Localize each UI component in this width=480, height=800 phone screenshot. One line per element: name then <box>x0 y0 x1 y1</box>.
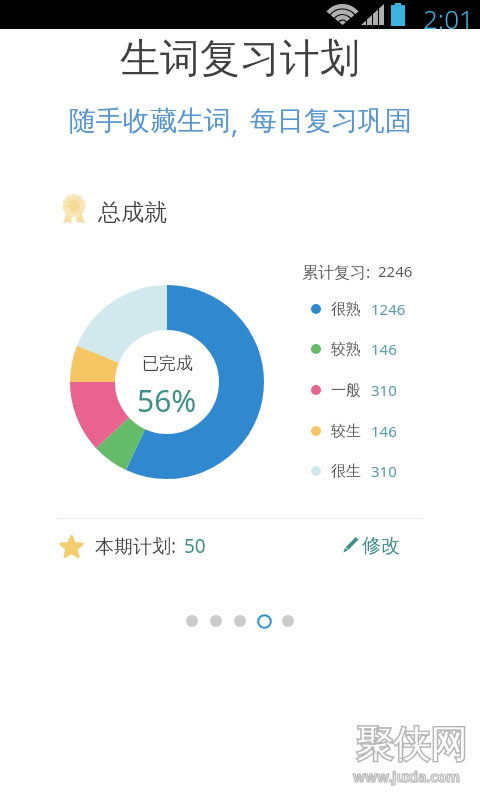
button[interactable]: Page 5 <box>276 609 300 633</box>
staticText: 本期计划: <box>95 533 177 559</box>
staticText: 310 <box>371 461 397 481</box>
button[interactable]: 一般 <box>311 377 397 403</box>
staticText: 56% <box>137 380 197 421</box>
staticText: 很熟 <box>331 300 361 319</box>
button[interactable]: 很熟 <box>311 296 406 322</box>
staticText: www.juxia.com <box>353 767 460 786</box>
staticText: 310 <box>371 380 397 400</box>
staticText: 修改 <box>362 534 400 558</box>
staticText: 每日复习巩固 <box>250 104 412 138</box>
staticText: , <box>231 104 239 141</box>
button[interactable]: 较生 <box>311 418 397 444</box>
button[interactable]: Page 4 <box>252 609 276 633</box>
button[interactable]: 修改 <box>341 534 400 558</box>
staticText: 1246 <box>371 299 406 319</box>
button[interactable]: Page 3 <box>228 609 252 633</box>
staticText: 随手收藏生词 <box>69 104 231 138</box>
staticText: 已完成 <box>142 353 193 374</box>
staticText: 146 <box>371 421 397 441</box>
staticText: 50 <box>184 533 206 559</box>
button[interactable]: 较熟 <box>311 336 397 362</box>
button[interactable]: Page 2 <box>204 609 228 633</box>
button[interactable]: Page 1 <box>180 609 204 633</box>
staticText: 累计复习: <box>302 261 371 283</box>
staticText: 总成就 <box>98 198 167 227</box>
staticText: 较熟 <box>331 340 361 359</box>
staticText: 2:01 <box>423 1 474 30</box>
staticText: 一般 <box>331 381 361 400</box>
staticText: 较生 <box>331 422 361 441</box>
staticText: 聚侠网 <box>356 721 467 768</box>
button[interactable]: 总成就 <box>60 194 167 224</box>
button[interactable]: 本期计划: <box>59 533 206 559</box>
staticText: 很生 <box>331 462 361 481</box>
staticText: 146 <box>371 339 397 359</box>
staticText: 生词复习计划 <box>0 33 480 83</box>
staticText: 2246 <box>378 261 413 281</box>
button[interactable]: 很生 <box>311 458 397 484</box>
